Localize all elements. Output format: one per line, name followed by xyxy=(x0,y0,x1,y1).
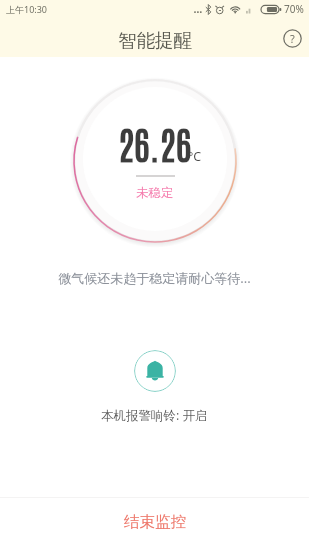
staticText: 结束监控 xyxy=(124,512,186,532)
staticText: 26.26 xyxy=(118,118,192,167)
staticText: 上午10:30 xyxy=(6,3,48,15)
staticText: °C xyxy=(188,148,202,165)
staticText: 本机报警响铃: 开启 xyxy=(101,407,208,424)
button[interactable]: Alarm bell enabled xyxy=(134,350,176,392)
staticText: 70% xyxy=(284,2,304,16)
button[interactable]: 结束监控 xyxy=(0,498,309,550)
button[interactable]: Help xyxy=(279,25,305,51)
staticText: 微气候还未趋于稳定请耐心等待... xyxy=(0,269,309,287)
staticText: 未稳定 xyxy=(136,185,174,201)
staticText: 智能提醒 xyxy=(118,29,192,52)
staticText: ? xyxy=(290,31,295,46)
